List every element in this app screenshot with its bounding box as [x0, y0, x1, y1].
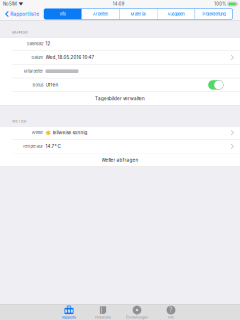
button[interactable]: Rapporte: [54, 305, 84, 320]
button[interactable]: Ausgaben: [157, 9, 195, 19]
staticText: Rapporte: [62, 315, 76, 319]
staticText: Wed, 18.05.2016 10:47: [45, 55, 94, 60]
button[interactable]: Rapportliste: [2, 8, 40, 20]
staticText: RAPPORT: [12, 30, 28, 35]
button[interactable]: Bonus ein- oder ausschalten: [208, 80, 223, 90]
staticText: 14:09: [113, 1, 125, 6]
staticText: Wetter: [31, 130, 43, 135]
button[interactable]: Material: [120, 9, 157, 19]
staticText: Protokolle: [95, 315, 111, 319]
staticText: Datum: [31, 55, 43, 60]
button[interactable]: Datum: [0, 51, 240, 64]
button[interactable]: Protokolle: [88, 305, 118, 320]
button[interactable]: Tagesbilder verwalten: [0, 92, 240, 105]
button[interactable]: Wetter: [0, 126, 240, 139]
staticText: Einstellungen: [126, 315, 148, 319]
staticText: ?: [169, 306, 173, 314]
staticText: Offen: [45, 82, 58, 88]
staticText: Arbeiten: [93, 12, 108, 16]
staticText: No SIM: [3, 1, 17, 6]
staticText: Rapportliste: [10, 11, 39, 17]
staticText: Bonus: [32, 82, 43, 87]
staticText: 12: [45, 41, 50, 46]
button[interactable]: Mitarbeiter: [0, 64, 240, 78]
staticText: teilweise sonnig: [52, 130, 87, 135]
button[interactable]: Info: [44, 9, 81, 19]
staticText: Projektleitung: [202, 12, 225, 16]
button[interactable]: Einstellungen: [122, 305, 152, 320]
button[interactable]: Projektleitung: [195, 9, 233, 19]
staticText: Temperatur: [22, 144, 43, 149]
staticText: WETTER: [12, 119, 26, 124]
button[interactable]: Wetter abfragen: [0, 153, 240, 167]
button[interactable]: Arbeiten: [82, 9, 119, 19]
button[interactable]: ?: [156, 305, 186, 320]
staticText: Ausgaben: [168, 12, 185, 16]
staticText: 100%: [214, 1, 226, 6]
staticText: Mitarbeiter: [23, 69, 43, 74]
button[interactable]: Temperatur: [0, 140, 240, 153]
staticText: Wetter abfragen: [101, 157, 138, 163]
staticText: Tagesbilder verwalten: [95, 96, 145, 101]
staticText: Info: [60, 12, 66, 16]
staticText: Material: [131, 12, 146, 16]
staticText: Info: [168, 315, 174, 319]
staticText: Datensatz: [26, 41, 43, 46]
button[interactable]: Datensatz: [0, 37, 240, 50]
staticText: 14.7° C: [45, 144, 60, 149]
